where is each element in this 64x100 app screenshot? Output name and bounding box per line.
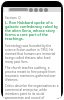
staticText: L. Ron Hubbard spoke of a galactic confe…: [5, 20, 59, 41]
button[interactable]: Tabs: [4, 8, 8, 12]
staticText: The church teaches auditing, a process m…: [5, 66, 59, 82]
staticText: Sections Q: [5, 16, 21, 20]
button[interactable]: Share: [39, 8, 43, 12]
button[interactable]: More: [44, 8, 48, 12]
staticText: Scientology was founded by the science f…: [5, 44, 59, 64]
button[interactable]: Reload: [29, 8, 33, 12]
button[interactable]: Address bar: [9, 8, 28, 11]
button[interactable]: Bookmark: [34, 8, 38, 12]
staticText: Critics describe the organisation as a c…: [5, 84, 59, 99]
